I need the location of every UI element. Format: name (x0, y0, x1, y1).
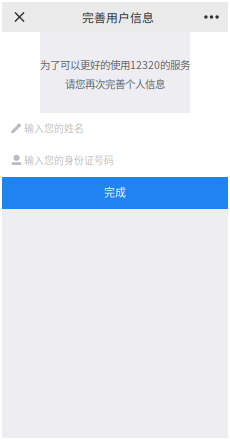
staticText: 输入您的身份证号码 (24, 153, 114, 167)
button[interactable]: More options (199, 2, 224, 31)
staticText: 输入您的姓名 (24, 121, 84, 135)
button[interactable]: 输入您的身份证号码 (2, 143, 228, 177)
staticText: 完成 (104, 184, 126, 200)
staticText: 请您再次完善个人信息 (65, 76, 165, 91)
staticText: 为了可以更好的使用12320的服务 (40, 57, 190, 72)
button[interactable]: Close (6, 2, 33, 31)
staticText: 完善用户信息 (82, 8, 154, 26)
button[interactable]: 输入您的姓名 (2, 113, 228, 143)
button[interactable]: 完成 (2, 177, 228, 209)
